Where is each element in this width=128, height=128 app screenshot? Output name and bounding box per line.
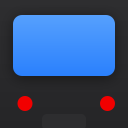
button[interactable]: Bus: [0, 0, 128, 128]
